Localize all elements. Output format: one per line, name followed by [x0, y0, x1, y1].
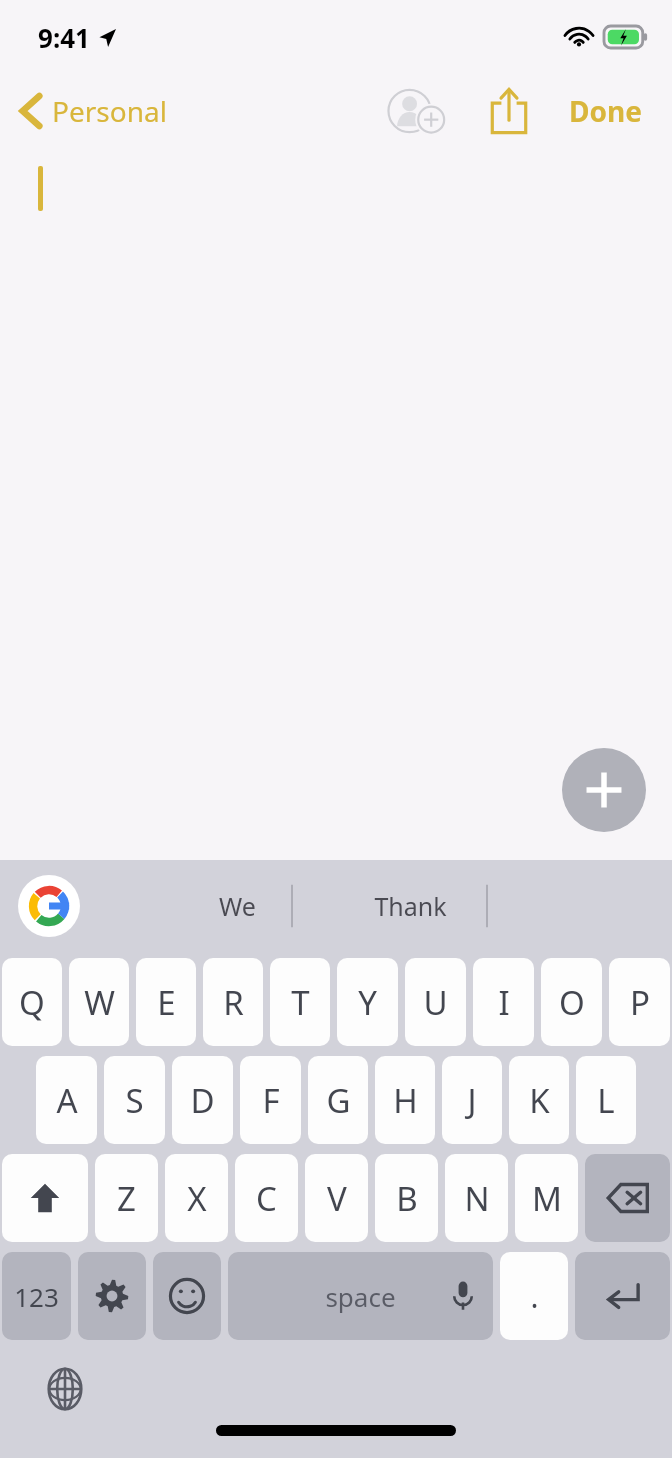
- staticText: Thank: [374, 889, 447, 923]
- button[interactable]: Change language: [38, 1362, 92, 1416]
- button[interactable]: H: [375, 1056, 435, 1144]
- staticText: I: [498, 980, 510, 1025]
- staticText: V: [327, 1176, 347, 1221]
- button[interactable]: C: [235, 1154, 298, 1242]
- button[interactable]: U: [405, 958, 466, 1046]
- staticText: H: [393, 1078, 418, 1123]
- button[interactable]: Gboard: [18, 875, 80, 937]
- staticText: We: [219, 889, 256, 923]
- staticText: .: [530, 1276, 539, 1317]
- staticText: Y: [358, 980, 377, 1025]
- button[interactable]: Y: [337, 958, 398, 1046]
- staticText: X: [187, 1176, 207, 1221]
- staticText: K: [529, 1078, 550, 1123]
- button[interactable]: Add: [562, 748, 646, 832]
- button[interactable]: Shift: [2, 1154, 88, 1242]
- staticText: D: [190, 1078, 215, 1123]
- staticText: N: [464, 1176, 490, 1221]
- staticText: Done: [569, 92, 642, 130]
- button[interactable]: F: [240, 1056, 301, 1144]
- staticText: J: [467, 1078, 477, 1123]
- button[interactable]: J: [442, 1056, 502, 1144]
- button[interactable]: B: [375, 1154, 438, 1242]
- staticText: C: [256, 1176, 277, 1221]
- button[interactable]: Enter: [575, 1252, 670, 1340]
- staticText: E: [157, 980, 176, 1025]
- button[interactable]: M: [515, 1154, 578, 1242]
- staticText: A: [56, 1078, 78, 1123]
- button[interactable]: Emoji: [153, 1252, 221, 1340]
- button[interactable]: Z: [95, 1154, 158, 1242]
- button[interactable]: E: [136, 958, 196, 1046]
- staticText: M: [532, 1176, 562, 1221]
- staticText: L: [597, 1078, 615, 1123]
- button[interactable]: Thank: [350, 875, 471, 937]
- staticText: P: [630, 980, 650, 1025]
- staticText: space: [325, 1279, 396, 1314]
- staticText: T: [291, 980, 310, 1025]
- button[interactable]: O: [541, 958, 602, 1046]
- button[interactable]: 123: [2, 1252, 71, 1340]
- button[interactable]: S: [104, 1056, 165, 1144]
- button[interactable]: L: [576, 1056, 636, 1144]
- button[interactable]: W: [69, 958, 129, 1046]
- staticText: Personal: [52, 92, 167, 130]
- staticText: Z: [117, 1176, 136, 1221]
- staticText: G: [326, 1078, 351, 1123]
- button[interactable]: N: [445, 1154, 508, 1242]
- button[interactable]: Done: [555, 84, 656, 138]
- staticText: S: [125, 1078, 144, 1123]
- button[interactable]: R: [203, 958, 263, 1046]
- button[interactable]: space: [228, 1252, 493, 1340]
- button[interactable]: Add people: [381, 80, 455, 142]
- button[interactable]: P: [609, 958, 670, 1046]
- button[interactable]: D: [172, 1056, 233, 1144]
- staticText: 123: [14, 1279, 59, 1314]
- staticText: O: [559, 980, 585, 1025]
- button[interactable]: Settings: [78, 1252, 146, 1340]
- button[interactable]: K: [509, 1056, 569, 1144]
- button[interactable]: I: [473, 958, 534, 1046]
- staticText: Q: [19, 980, 45, 1025]
- button[interactable]: A: [36, 1056, 97, 1144]
- staticText: U: [423, 980, 448, 1025]
- staticText: R: [223, 980, 244, 1025]
- button[interactable]: .: [500, 1252, 568, 1340]
- button[interactable]: Share: [477, 80, 541, 142]
- button[interactable]: X: [165, 1154, 228, 1242]
- button[interactable]: Personal: [0, 86, 179, 136]
- button[interactable]: Backspace: [585, 1154, 670, 1242]
- button[interactable]: T: [270, 958, 330, 1046]
- button[interactable]: We: [195, 875, 280, 937]
- button[interactable]: G: [308, 1056, 368, 1144]
- staticText: W: [84, 980, 115, 1025]
- staticText: B: [396, 1176, 418, 1221]
- button[interactable]: V: [305, 1154, 368, 1242]
- staticText: 9:41: [38, 20, 90, 55]
- button[interactable]: Q: [2, 958, 62, 1046]
- staticText: F: [262, 1078, 280, 1123]
